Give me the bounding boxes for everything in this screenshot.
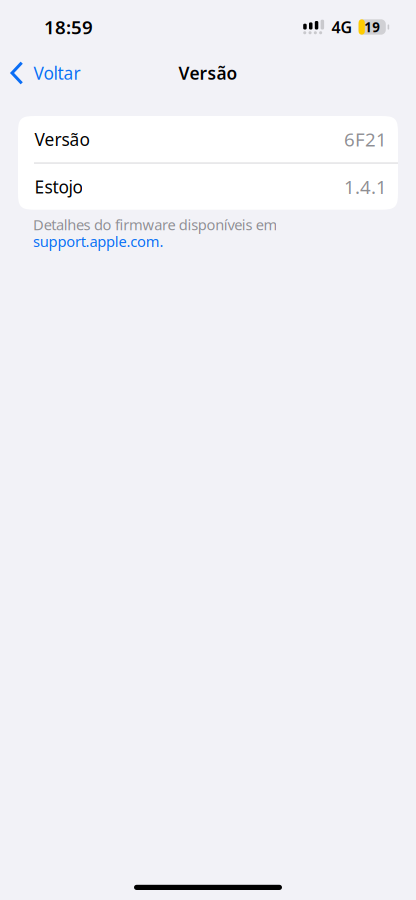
staticText: 1.4.1 <box>344 174 387 199</box>
staticText: Versão <box>178 61 237 84</box>
button[interactable]: support.apple.com. <box>33 232 164 251</box>
staticText: 18:59 <box>44 15 93 39</box>
staticText: Estojo <box>34 175 82 198</box>
staticText: Versão <box>34 128 89 151</box>
staticText: Voltar <box>34 61 81 84</box>
staticText: 4G <box>332 16 353 38</box>
staticText: support.apple.com. <box>33 232 164 251</box>
staticText: Detalhes do firmware disponíveis em <box>33 215 277 234</box>
staticText: 19 <box>364 18 380 36</box>
staticText: 6F21 <box>344 127 387 152</box>
button[interactable]: Voltar <box>0 51 95 95</box>
